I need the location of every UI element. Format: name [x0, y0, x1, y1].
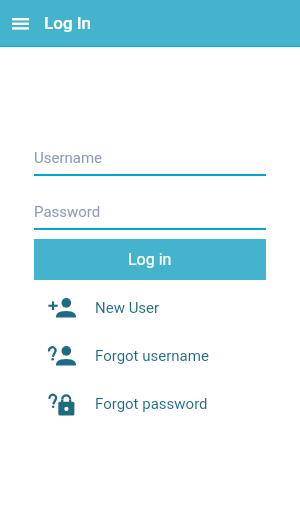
staticText: Username [34, 149, 103, 167]
staticText: Forgot password [95, 395, 208, 413]
button[interactable]: New User [0, 284, 300, 332]
button[interactable]: Log in [34, 239, 266, 280]
staticText: Password [34, 203, 101, 221]
staticText: Log in [128, 250, 172, 269]
staticText: New User [95, 299, 160, 317]
button[interactable]: Forgot password [0, 380, 300, 428]
staticText: Log In [44, 13, 92, 33]
staticText: Forgot username [95, 347, 209, 365]
button[interactable]: Open navigation menu [4, 0, 36, 47]
button[interactable]: Forgot username [0, 332, 300, 380]
